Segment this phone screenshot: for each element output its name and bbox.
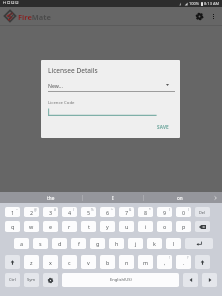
- button[interactable]: 4: [62, 207, 77, 217]
- button[interactable]: f: [71, 238, 86, 249]
- button[interactable]: 3: [43, 207, 58, 217]
- button[interactable]: the: [0, 192, 82, 203]
- staticText: p: [182, 223, 186, 230]
- staticText: r: [68, 223, 71, 230]
- button[interactable]: r: [62, 221, 77, 232]
- button[interactable]: Move cursor right: [202, 273, 217, 287]
- button[interactable]: Sym: [24, 273, 39, 287]
- staticText: ^: [111, 208, 113, 212]
- staticText: Del: [199, 210, 206, 215]
- staticText: %: [91, 208, 94, 212]
- staticText: 100%: [189, 1, 200, 6]
- button[interactable]: 1: [5, 207, 20, 217]
- staticText: 8:13 AM: [204, 1, 220, 6]
- staticText: q: [11, 223, 15, 230]
- button[interactable]: Move cursor left: [183, 273, 198, 287]
- staticText: z: [30, 259, 33, 266]
- staticText: SAVE: [157, 124, 169, 130]
- staticText: n: [125, 259, 129, 266]
- staticText: 6: [106, 209, 110, 216]
- button[interactable]: q: [5, 221, 20, 232]
- button[interactable]: More options: [207, 10, 220, 23]
- staticText: &: [129, 208, 132, 212]
- button[interactable]: h: [109, 238, 124, 249]
- staticText: j: [135, 240, 137, 247]
- staticText: 4: [68, 209, 72, 216]
- button[interactable]: New...: [48, 81, 175, 92]
- staticText: ?: [187, 256, 189, 260]
- staticText: h: [115, 240, 119, 247]
- staticText: ~: [16, 208, 18, 212]
- staticText: .: [183, 259, 185, 266]
- button[interactable]: s: [33, 238, 48, 249]
- button[interactable]: i: [138, 221, 153, 232]
- button[interactable]: k: [147, 238, 162, 249]
- button[interactable]: 8: [138, 207, 153, 217]
- button[interactable]: Keyboard settings: [43, 273, 58, 287]
- button[interactable]: v: [81, 255, 96, 269]
- button[interactable]: c: [62, 255, 77, 269]
- button[interactable]: t: [81, 221, 96, 232]
- staticText: g: [96, 240, 100, 247]
- button[interactable]: x: [43, 255, 58, 269]
- button[interactable]: on: [143, 192, 216, 203]
- staticText: on: [177, 195, 183, 201]
- button[interactable]: Shift: [5, 255, 20, 269]
- button[interactable]: Shift: [195, 255, 210, 269]
- button[interactable]: Backspace: [195, 221, 210, 232]
- button[interactable]: More suggestions: [208, 192, 222, 203]
- staticText: @: [34, 208, 37, 212]
- button[interactable]: 9: [157, 207, 172, 217]
- staticText: 3: [49, 209, 53, 216]
- staticText: x: [49, 259, 52, 266]
- staticText: m: [143, 259, 149, 266]
- button[interactable]: n: [119, 255, 134, 269]
- button[interactable]: j: [128, 238, 143, 249]
- staticText: a: [20, 240, 24, 247]
- staticText: FireMate: [18, 12, 51, 22]
- button[interactable]: 7: [119, 207, 134, 217]
- button[interactable]: a: [14, 238, 29, 249]
- staticText: (: [169, 208, 170, 212]
- staticText: f: [78, 240, 80, 247]
- staticText: English(US): [110, 277, 132, 283]
- staticText: !: [169, 256, 170, 260]
- button[interactable]: Ctrl: [5, 273, 20, 287]
- button[interactable]: e: [43, 221, 58, 232]
- staticText: /: [73, 208, 75, 212]
- button[interactable]: SAVE: [155, 123, 171, 131]
- staticText: #: [54, 208, 56, 212]
- button[interactable]: w: [24, 221, 39, 232]
- button[interactable]: b: [100, 255, 115, 269]
- button[interactable]: o: [157, 221, 172, 232]
- button[interactable]: 2: [24, 207, 39, 217]
- staticText: ,: [164, 259, 166, 266]
- staticText: Licence Code: [48, 99, 75, 105]
- button[interactable]: l: [166, 238, 181, 249]
- button[interactable]: English(US): [62, 273, 179, 287]
- button[interactable]: g: [90, 238, 105, 249]
- button[interactable]: Del: [195, 207, 210, 217]
- button[interactable]: Enter: [185, 238, 213, 249]
- button[interactable]: Settings: [192, 9, 207, 24]
- button[interactable]: 0: [176, 207, 191, 217]
- button[interactable]: ,: [157, 255, 172, 269]
- button[interactable]: y: [100, 221, 115, 232]
- button[interactable]: d: [52, 238, 67, 249]
- staticText: w: [29, 223, 34, 230]
- staticText: d: [58, 240, 62, 247]
- button[interactable]: z: [24, 255, 39, 269]
- button[interactable]: 5: [81, 207, 96, 217]
- button[interactable]: .: [176, 255, 191, 269]
- staticText: i: [145, 223, 147, 230]
- button[interactable]: p: [176, 221, 191, 232]
- button[interactable]: u: [119, 221, 134, 232]
- button[interactable]: m: [138, 255, 153, 269]
- staticText: l: [173, 240, 175, 247]
- button[interactable]: I: [82, 192, 143, 203]
- staticText: 7: [125, 209, 129, 216]
- button[interactable]: 6: [100, 207, 115, 217]
- staticText: 8: [144, 209, 148, 216]
- staticText: 5: [87, 209, 91, 216]
- staticText: ): [188, 208, 189, 212]
